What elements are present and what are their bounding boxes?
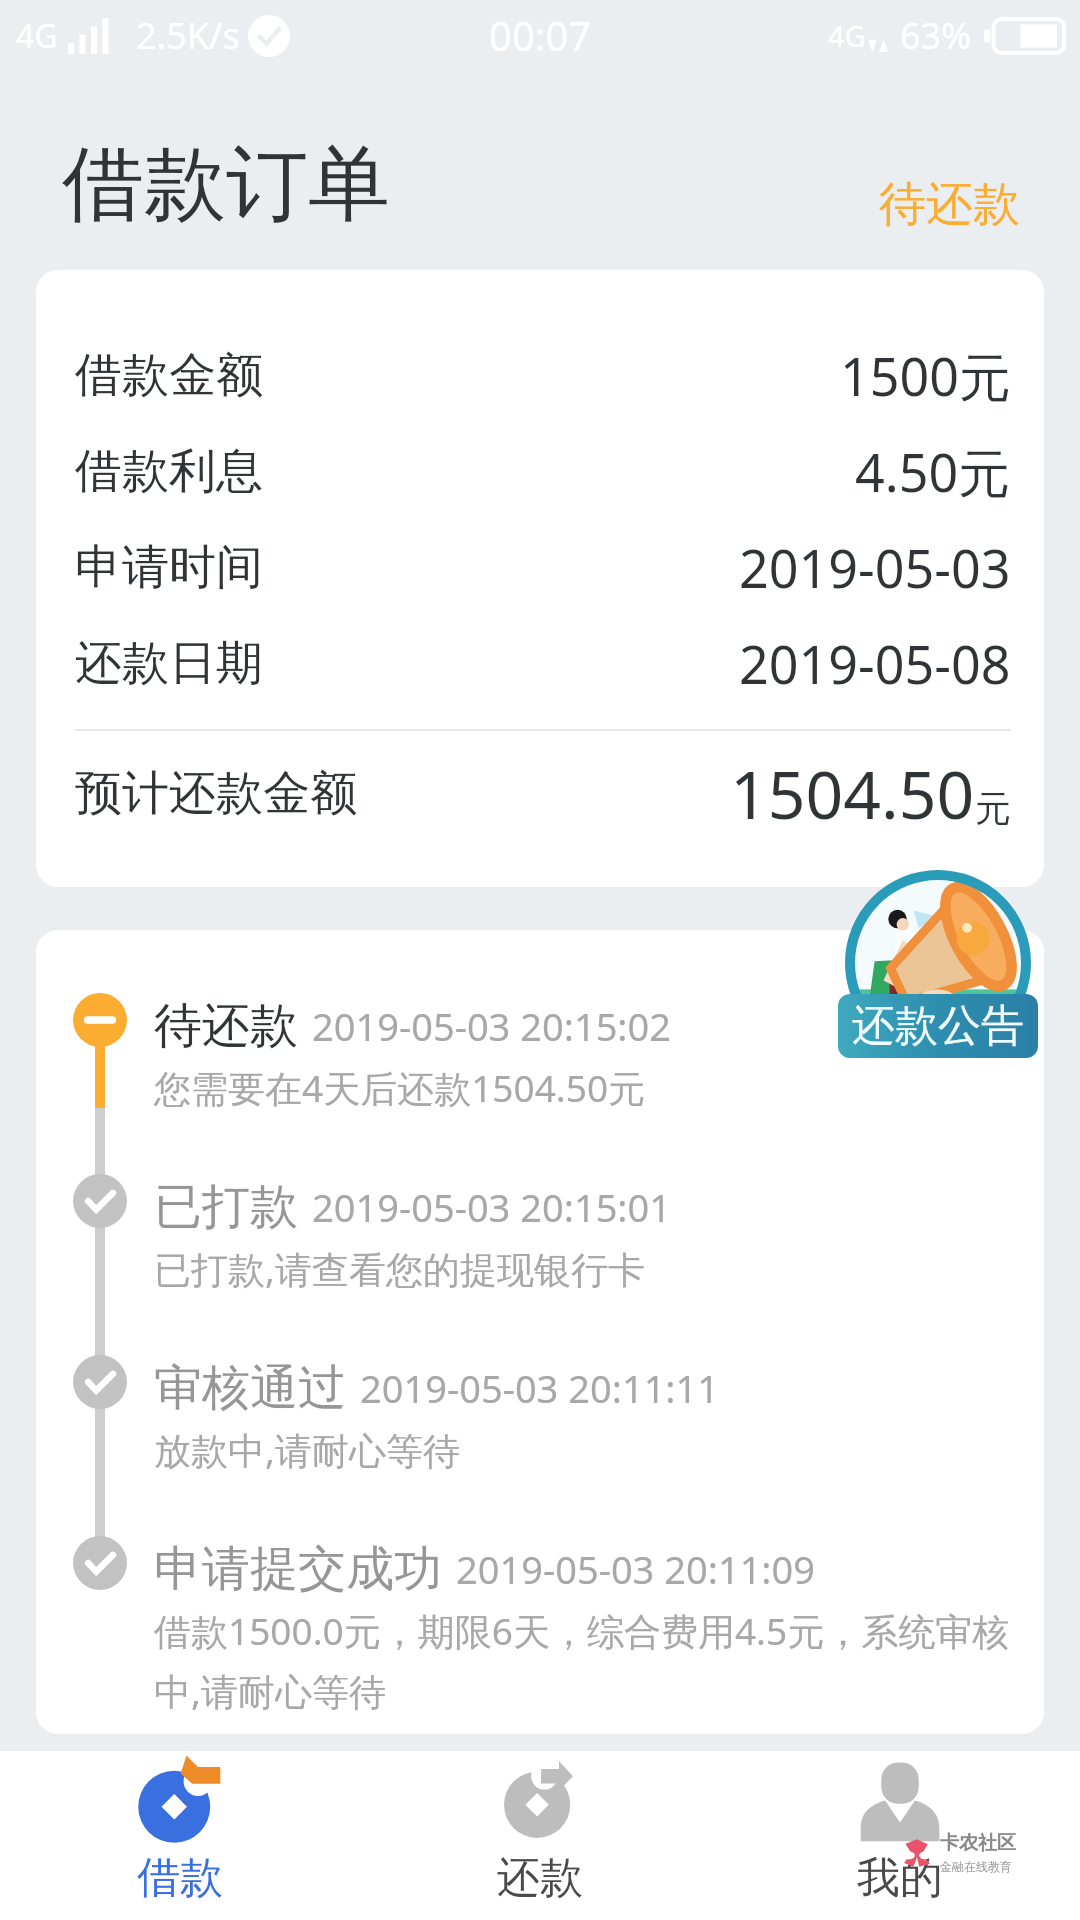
- staticText: 2019-05-03 20:11:09: [456, 1543, 816, 1595]
- staticText: 63%: [900, 11, 972, 60]
- staticText: 4.50元: [855, 436, 1011, 507]
- staticText: 借款金额: [75, 346, 263, 405]
- staticText: 借款1500.0元，期限6天，综合费用4.5元，系统审核中,请耐心等待: [154, 1605, 1026, 1716]
- button[interactable]: 还款日期: [75, 615, 1011, 711]
- staticText: 您需要在4天后还款1504.50元: [154, 1062, 646, 1113]
- staticText: 借款利息: [75, 442, 263, 501]
- staticText: 预计还款金额: [75, 764, 357, 823]
- staticText: 卡农社区: [940, 1831, 1016, 1855]
- staticText: 2019-05-03: [739, 532, 1011, 603]
- staticText: 1504.50: [730, 748, 975, 838]
- staticText: 已打款: [154, 1177, 298, 1237]
- staticText: 1500元: [840, 340, 1011, 411]
- button[interactable]: 待还款: [859, 165, 1040, 244]
- staticText: 审核通过: [154, 1358, 346, 1418]
- staticText: 还款公告: [852, 999, 1024, 1053]
- staticText: 借款订单: [62, 133, 390, 236]
- staticText: 2019-05-03 20:15:01: [312, 1181, 672, 1233]
- staticText: 我的: [857, 1851, 943, 1904]
- staticText: 金融在线教育: [940, 1859, 1012, 1874]
- staticText: 借款: [137, 1851, 223, 1904]
- staticText: 待还款: [154, 996, 298, 1056]
- staticText: 2019-05-03 20:11:11: [360, 1362, 720, 1414]
- staticText: 4G: [828, 16, 866, 55]
- staticText: 还款: [497, 1851, 583, 1904]
- button[interactable]: 还款: [360, 1751, 720, 1920]
- staticText: 已打款,请查看您的提现银行卡: [154, 1243, 645, 1294]
- staticText: 申请提交成功: [154, 1539, 442, 1599]
- staticText: 2019-05-08: [739, 628, 1011, 699]
- button[interactable]: 借款利息: [75, 423, 1011, 519]
- staticText: 待还款: [879, 175, 1020, 234]
- button[interactable]: 申请时间: [75, 519, 1011, 615]
- button[interactable]: 借款金额: [75, 327, 1011, 423]
- button[interactable]: 还款公告: [838, 872, 1038, 1072]
- button[interactable]: 借款: [0, 1751, 360, 1920]
- staticText: 2019-05-03 20:15:02: [312, 1000, 672, 1052]
- staticText: 申请时间: [75, 538, 263, 597]
- staticText: 4G: [16, 14, 58, 58]
- staticText: 2.5K/s: [136, 11, 240, 60]
- button[interactable]: 我的: [720, 1751, 1080, 1920]
- staticText: 元: [975, 786, 1011, 831]
- staticText: 还款日期: [75, 634, 263, 693]
- staticText: 放款中,请耐心等待: [154, 1424, 460, 1475]
- staticText: 00:07: [489, 8, 592, 62]
